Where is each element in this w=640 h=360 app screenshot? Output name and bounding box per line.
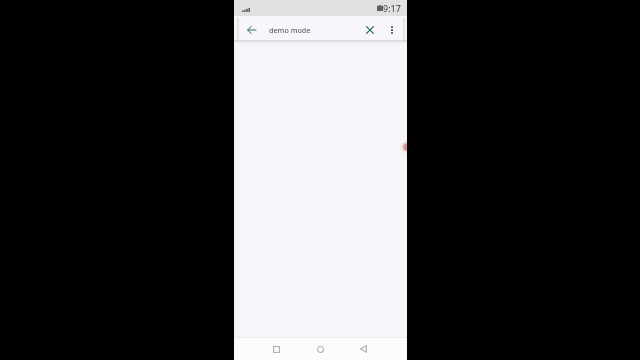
button[interactable]: Back: [243, 21, 260, 38]
button[interactable]: More options: [383, 21, 400, 38]
button[interactable]: Clear search: [361, 21, 378, 38]
staticText: 9:17: [383, 2, 401, 14]
button[interactable]: Back: [353, 339, 373, 359]
button[interactable]: Recents: [266, 339, 286, 359]
staticText: demo mode: [269, 25, 311, 35]
button[interactable]: Home: [310, 339, 330, 359]
